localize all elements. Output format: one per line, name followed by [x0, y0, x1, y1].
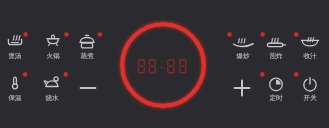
staticText: 定时 [269, 94, 283, 102]
staticText: 收汁 [303, 52, 317, 60]
button[interactable]: Timer [259, 73, 293, 103]
button[interactable]: Decrease [74, 74, 102, 102]
staticText: 保温 [8, 94, 22, 102]
button[interactable]: Deep fry [259, 31, 293, 61]
staticText: 蒸煮 [80, 52, 94, 60]
staticText: 烧水 [45, 94, 59, 102]
staticText: 爆炒 [236, 52, 250, 60]
button[interactable]: Hot pot [36, 31, 70, 61]
staticText: 煲汤 [8, 52, 22, 60]
staticText: 火锅 [46, 52, 60, 60]
button[interactable]: Boil water [35, 73, 69, 103]
button[interactable]: Power dial [115, 17, 211, 113]
button[interactable]: Keep warm [0, 73, 32, 103]
button[interactable]: Steam [70, 31, 104, 61]
button[interactable]: Power [293, 73, 327, 103]
button[interactable]: Increase [228, 74, 256, 102]
button[interactable]: Stir fry [226, 31, 260, 61]
button[interactable]: Soup [0, 31, 32, 61]
staticText: 开关 [303, 94, 317, 102]
staticText: 煎炸 [269, 52, 283, 60]
button[interactable]: Reduce [293, 31, 327, 61]
